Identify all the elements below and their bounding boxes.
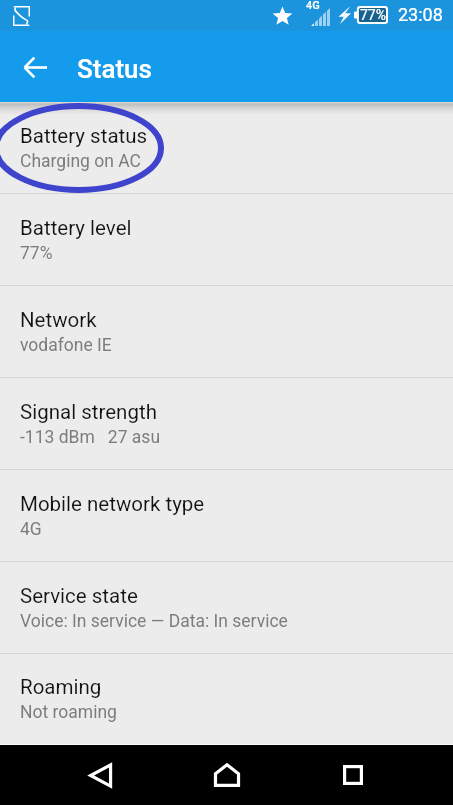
staticText: 77% — [360, 7, 386, 23]
staticText: vodafone IE — [20, 335, 112, 356]
staticText: Charging on AC — [20, 151, 141, 172]
staticText: Battery level — [20, 216, 132, 240]
button[interactable]: Service state — [0, 562, 453, 654]
button[interactable]: Home — [201, 749, 253, 801]
staticText: Service state — [20, 584, 138, 608]
button[interactable]: Battery level — [0, 194, 453, 286]
button[interactable]: Navigate up — [11, 43, 59, 91]
staticText: Network — [20, 308, 97, 332]
button[interactable]: Network — [0, 286, 453, 378]
staticText: 23:08 — [398, 4, 443, 25]
staticText: 4G — [20, 519, 42, 540]
button[interactable]: Signal strength — [0, 378, 453, 470]
staticText: 4G — [306, 0, 320, 12]
button[interactable]: Recent apps — [327, 749, 379, 801]
button[interactable]: Mobile network type — [0, 470, 453, 562]
staticText: Battery status — [20, 124, 148, 148]
staticText: Signal strength — [20, 400, 157, 424]
staticText: Roaming — [20, 675, 102, 699]
staticText: Mobile network type — [20, 492, 205, 516]
button[interactable]: Roaming — [0, 654, 453, 745]
button[interactable]: Battery status — [0, 102, 453, 194]
staticText: 77% — [20, 243, 53, 264]
button[interactable]: Back — [74, 749, 126, 801]
staticText: Status — [77, 54, 152, 84]
staticText: -113 dBm 27 asu — [20, 427, 161, 448]
staticText: Not roaming — [20, 702, 117, 723]
staticText: Voice: In service — Data: In service — [20, 611, 288, 632]
